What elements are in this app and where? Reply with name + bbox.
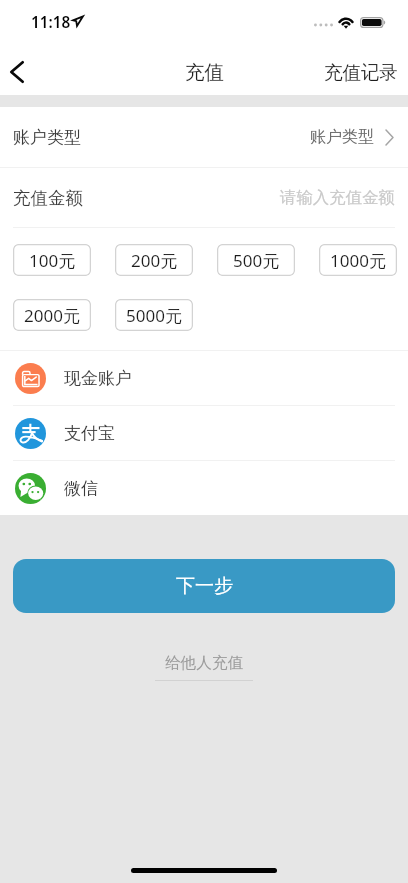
staticText: 给他人充值	[165, 653, 243, 673]
staticText: 账户类型	[310, 127, 374, 147]
staticText: 11:18	[31, 12, 71, 33]
button[interactable]: 下一步	[13, 559, 395, 613]
staticText: 200元	[131, 249, 178, 272]
staticText: 100元	[29, 249, 76, 272]
button[interactable]: 2000元	[13, 299, 91, 331]
staticText: 请输入充值金额	[280, 187, 395, 208]
button[interactable]: 5000元	[115, 299, 193, 331]
staticText: 充值记录	[324, 61, 398, 84]
button[interactable]: 充值记录	[324, 49, 398, 95]
staticText: 1000元	[330, 249, 386, 272]
staticText: 支付宝	[64, 423, 115, 444]
staticText: 充值	[185, 60, 224, 85]
button[interactable]: 现金账户	[0, 351, 408, 405]
button[interactable]: Back	[0, 47, 42, 93]
button[interactable]: 账户类型	[0, 107, 408, 167]
button[interactable]: 给他人充值	[149, 653, 259, 681]
button[interactable]: 100元	[13, 244, 91, 276]
staticText: 现金账户	[64, 368, 132, 389]
button[interactable]: 微信	[0, 461, 408, 515]
button[interactable]: 200元	[115, 244, 193, 276]
staticText: 5000元	[126, 304, 182, 327]
staticText: 500元	[233, 249, 280, 272]
staticText: 下一步	[176, 574, 233, 598]
staticText: 微信	[64, 478, 98, 499]
button[interactable]: 支付宝	[0, 406, 408, 460]
button[interactable]: 1000元	[319, 244, 397, 276]
staticText: 账户类型	[13, 127, 81, 148]
staticText: 2000元	[24, 304, 80, 327]
staticText: 充值金额	[13, 187, 83, 209]
button[interactable]: 500元	[217, 244, 295, 276]
